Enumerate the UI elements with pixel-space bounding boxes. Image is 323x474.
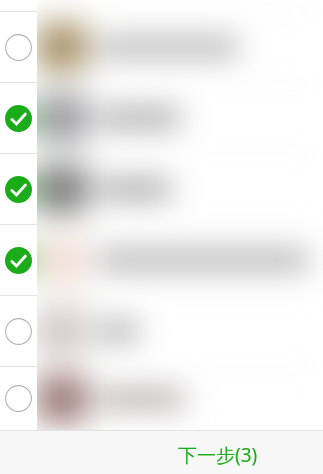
button[interactable] (0, 225, 37, 295)
staticText: 下一步(3) (178, 442, 258, 468)
button[interactable] (0, 12, 37, 82)
button[interactable] (0, 296, 37, 366)
button[interactable] (0, 83, 37, 153)
button[interactable] (0, 367, 37, 430)
button[interactable] (0, 154, 37, 224)
button[interactable]: 下一步(3) (161, 431, 274, 474)
